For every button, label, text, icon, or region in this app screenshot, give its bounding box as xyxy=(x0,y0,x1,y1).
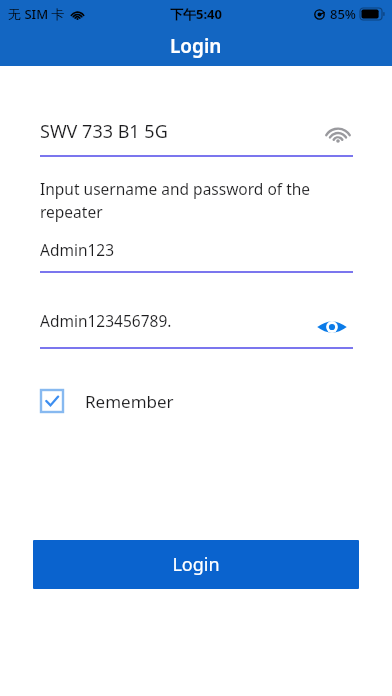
staticText: SWV 733 B1 5G xyxy=(40,119,168,144)
button[interactable]: Show password xyxy=(316,317,348,337)
staticText: Login xyxy=(172,552,220,577)
staticText: Admin123456789. xyxy=(40,310,172,331)
button[interactable]: Remember xyxy=(33,383,174,419)
button[interactable]: Admin123456789. xyxy=(40,303,353,349)
staticText: 无 SIM 卡 xyxy=(8,5,65,23)
staticText: Login xyxy=(170,33,222,59)
staticText: Input username and password of the repea… xyxy=(40,178,330,223)
staticText: Remember xyxy=(85,390,174,413)
button[interactable]: Admin123 xyxy=(40,232,353,273)
staticText: Admin123 xyxy=(40,239,115,260)
button[interactable]: Wi-Fi signal xyxy=(323,122,353,144)
button[interactable]: Login xyxy=(33,540,359,589)
staticText: 85% xyxy=(330,5,356,23)
staticText: 下午5:40 xyxy=(170,5,222,23)
button[interactable]: SWV 733 B1 5G xyxy=(40,112,353,157)
